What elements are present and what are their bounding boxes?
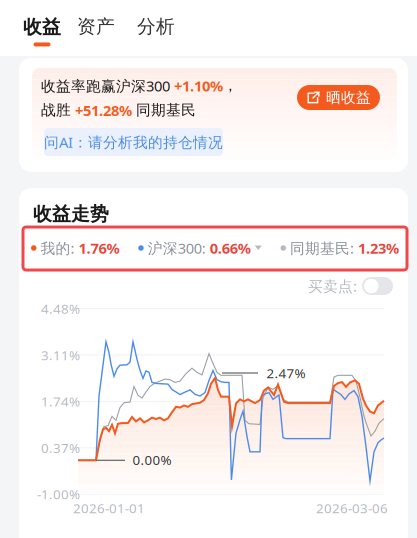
staticText: 资产 xyxy=(77,15,115,38)
button[interactable]: 资产 xyxy=(74,14,118,38)
staticText: 0.37% xyxy=(41,439,80,457)
button[interactable]: 收益 xyxy=(20,14,64,48)
staticText: 收益 xyxy=(23,15,61,38)
staticText: 2026-03-06 xyxy=(316,499,388,517)
staticText: 1.23% xyxy=(358,238,399,258)
staticText: 晒收益 xyxy=(326,88,371,106)
button[interactable]: 分析 xyxy=(134,14,178,38)
staticText: 收益率跑赢沪深300 xyxy=(41,76,174,95)
staticText: 同期基民 xyxy=(132,101,196,119)
staticText: 1.76% xyxy=(78,238,119,258)
staticText: 2.47% xyxy=(266,364,305,382)
button[interactable]: 晒收益 xyxy=(297,85,380,110)
button[interactable]: 问AI：请分析我的持仓情况 xyxy=(44,128,223,156)
staticText: 沪深300: xyxy=(144,238,210,258)
staticText: -1.00% xyxy=(37,485,80,503)
staticText: 收益走势 xyxy=(33,202,109,225)
staticText: 问AI：请分析我的持仓情况 xyxy=(44,132,223,152)
staticText: 买卖点: xyxy=(308,276,357,296)
staticText: 1.74% xyxy=(41,392,80,410)
staticText: +51.28% xyxy=(75,100,132,120)
button[interactable]: 买卖点开关 xyxy=(362,277,393,295)
staticText: ， xyxy=(223,77,238,95)
staticText: 我的: xyxy=(36,238,78,258)
staticText: 分析 xyxy=(137,15,175,38)
staticText: 同期基民: xyxy=(286,238,358,258)
staticText: 2026-01-01 xyxy=(73,499,145,517)
staticText: 0.66% xyxy=(210,238,251,258)
staticText: 0.00% xyxy=(132,451,171,469)
staticText: 4.48% xyxy=(41,300,80,317)
staticText: +1.10% xyxy=(174,76,223,95)
staticText: 战胜 xyxy=(41,101,75,119)
staticText: 3.11% xyxy=(41,346,80,364)
